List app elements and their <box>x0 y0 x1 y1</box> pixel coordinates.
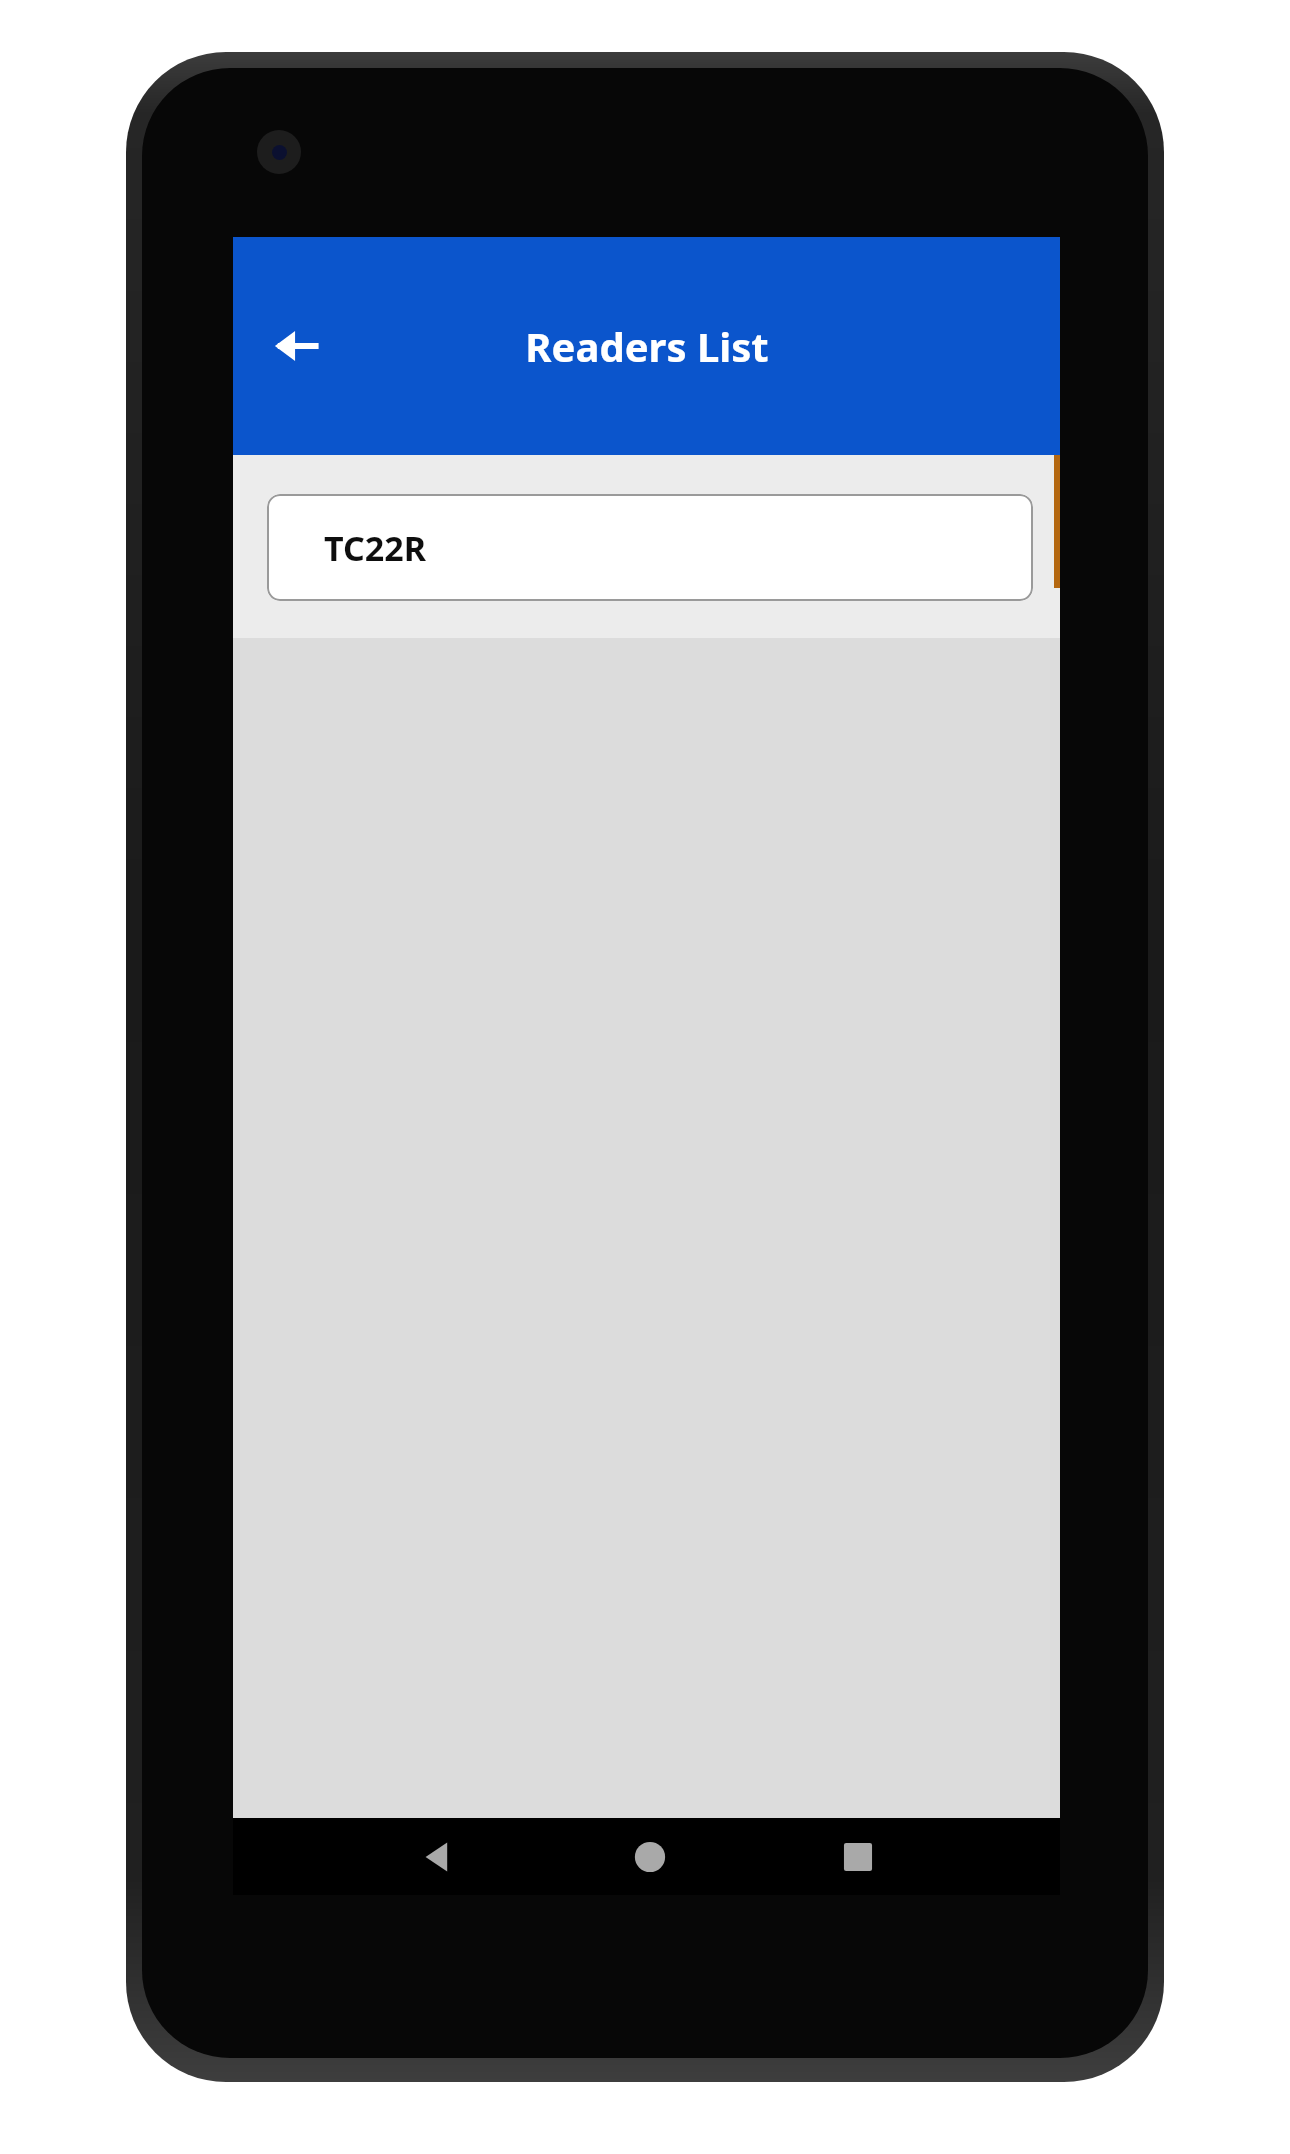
staticText: TC22R <box>324 525 426 571</box>
button[interactable]: Back <box>411 1830 465 1884</box>
button[interactable]: Recent apps <box>831 1830 885 1884</box>
button[interactable]: TC22R <box>267 494 1033 601</box>
staticText: Readers List <box>525 319 769 373</box>
button[interactable]: Home <box>623 1830 677 1884</box>
button[interactable]: Back <box>257 306 337 386</box>
